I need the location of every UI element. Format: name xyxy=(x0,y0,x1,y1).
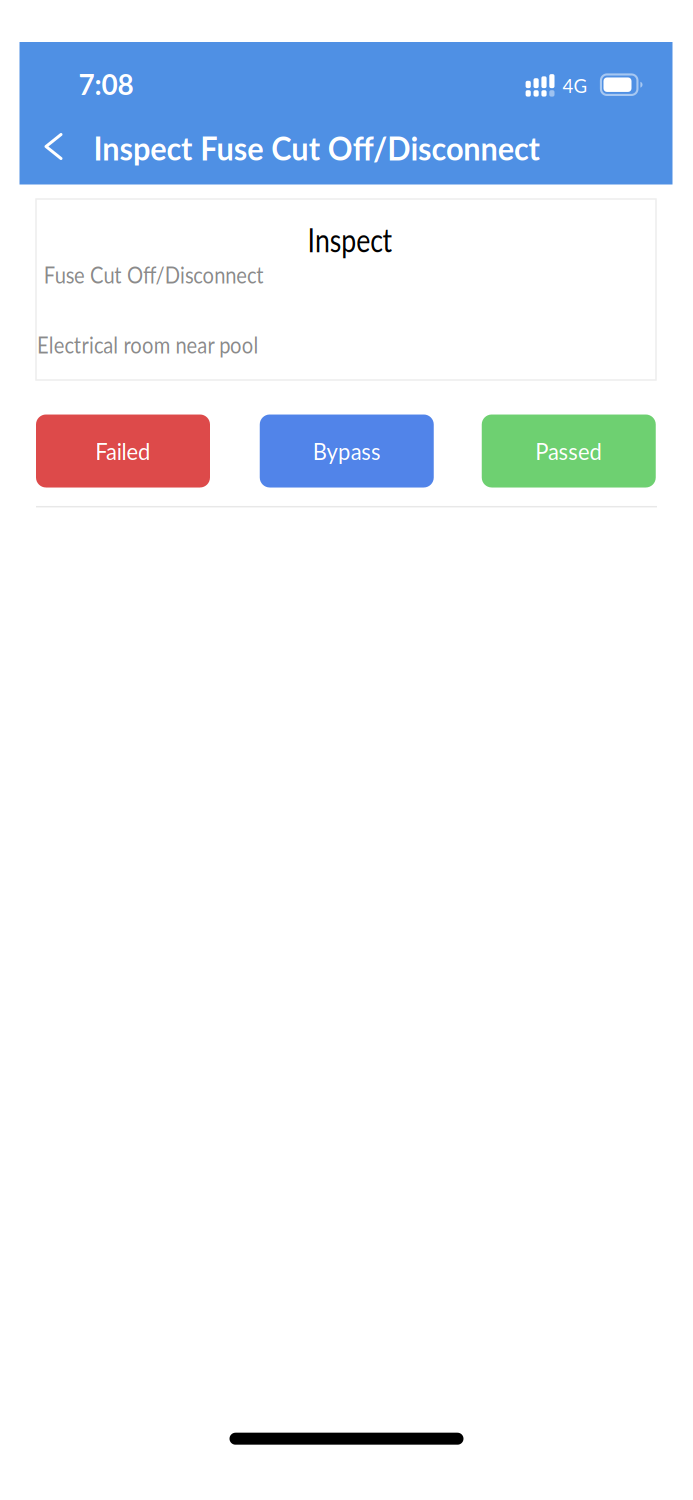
staticText: Inspect Fuse Cut Off/Disconnect xyxy=(94,129,559,167)
button[interactable]: Failed xyxy=(36,414,210,487)
staticText: Inspect xyxy=(298,220,401,259)
staticText: Electrical room near pool xyxy=(37,330,301,359)
staticText: Failed xyxy=(94,438,151,465)
staticText: 7:08 xyxy=(78,67,133,101)
staticText: Bypass xyxy=(312,438,382,465)
staticText: 4G xyxy=(562,74,587,97)
button[interactable]: Back xyxy=(31,124,75,168)
button[interactable]: Bypass xyxy=(260,414,434,487)
button[interactable]: Passed xyxy=(482,414,656,487)
staticText: Passed xyxy=(534,438,603,465)
staticText: Fuse Cut Off/Disconnect xyxy=(44,260,306,289)
